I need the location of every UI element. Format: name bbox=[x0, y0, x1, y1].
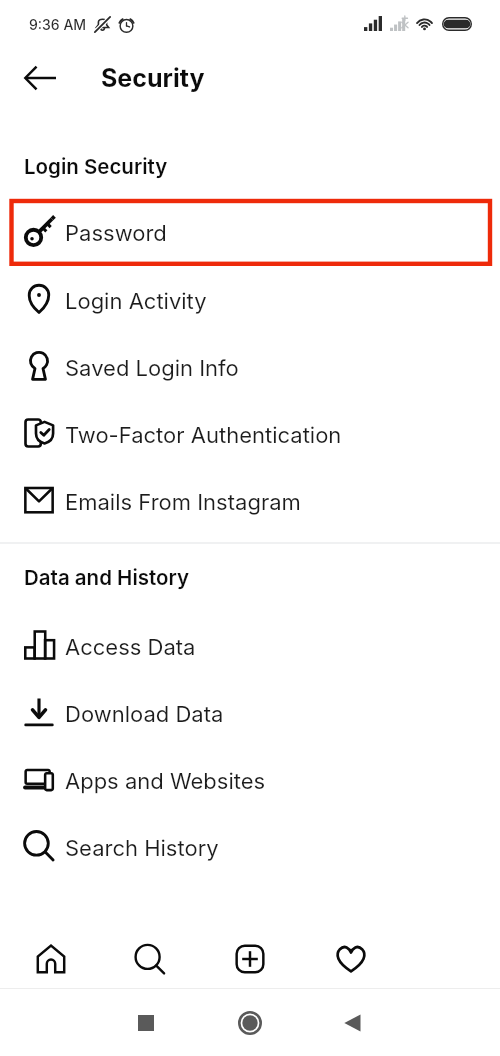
button[interactable]: Access Data bbox=[0, 612, 500, 678]
staticText: Login Activity bbox=[65, 288, 207, 315]
button[interactable]: Apps and Websites bbox=[0, 746, 500, 812]
button[interactable]: Back bbox=[302, 989, 402, 1056]
button[interactable]: Home bbox=[200, 989, 300, 1056]
button[interactable]: Search bbox=[102, 925, 198, 988]
button[interactable]: Download Data bbox=[0, 679, 500, 745]
staticText: Apps and Websites bbox=[65, 768, 266, 795]
button[interactable]: Back bbox=[17, 57, 63, 99]
button[interactable]: New post bbox=[202, 925, 298, 988]
button[interactable]: Activity bbox=[303, 925, 399, 988]
staticText: 9:36 AM bbox=[29, 16, 87, 33]
staticText: Login Security bbox=[24, 154, 168, 179]
staticText: Emails From Instagram bbox=[65, 489, 301, 516]
button[interactable]: Login Activity bbox=[0, 266, 500, 332]
staticText: Data and History bbox=[24, 565, 190, 590]
staticText: Saved Login Info bbox=[65, 355, 239, 382]
button[interactable]: Password bbox=[0, 198, 500, 264]
button[interactable]: Recents bbox=[96, 989, 196, 1056]
staticText: Password bbox=[65, 220, 167, 247]
staticText: Access Data bbox=[65, 634, 196, 661]
button[interactable]: Two-Factor Authentication bbox=[0, 400, 500, 466]
button[interactable]: Saved Login Info bbox=[0, 333, 500, 399]
staticText: Security bbox=[101, 63, 205, 93]
button[interactable]: Emails From Instagram bbox=[0, 467, 500, 533]
staticText: Download Data bbox=[65, 701, 224, 728]
button[interactable]: Home bbox=[3, 925, 99, 988]
staticText: Two-Factor Authentication bbox=[65, 422, 342, 449]
button[interactable]: Search History bbox=[0, 813, 500, 879]
staticText: Search History bbox=[65, 835, 219, 862]
